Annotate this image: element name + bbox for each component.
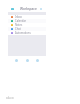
button[interactable]: Calendar	[8, 19, 46, 23]
button[interactable]: Chat	[8, 27, 46, 31]
button[interactable]: Automations	[8, 31, 46, 35]
button[interactable]: Settings	[36, 59, 39, 62]
staticText: Inbox	[15, 15, 22, 19]
staticText: Calendar	[15, 19, 26, 23]
staticText: Automations	[15, 31, 31, 35]
staticText: ab.co	[6, 96, 14, 100]
button[interactable]: Notes	[8, 23, 46, 27]
button[interactable]: Home	[15, 59, 18, 62]
button[interactable]: Menu	[11, 8, 14, 10]
staticText: Workspace	[20, 7, 37, 11]
button[interactable]: Search	[26, 59, 29, 62]
button[interactable]: Inbox	[8, 15, 46, 19]
staticText: Chat	[15, 27, 21, 31]
staticText: Notes	[15, 23, 23, 27]
